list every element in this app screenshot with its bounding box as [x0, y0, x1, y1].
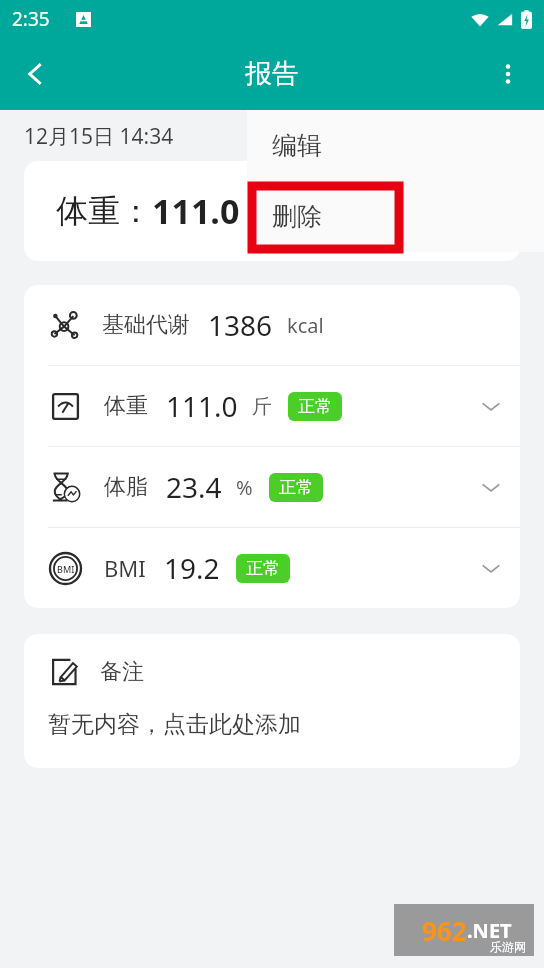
staticText: 正常 [279, 477, 313, 498]
button[interactable]: 删除 [247, 181, 544, 252]
staticText: % [236, 474, 253, 501]
button[interactable]: 体重 [24, 366, 520, 446]
button[interactable]: 体脂 [24, 447, 520, 527]
staticText: 1386 [208, 306, 273, 344]
staticText: 正常 [298, 396, 332, 417]
staticText: 19.2 [164, 549, 220, 587]
staticText: 报告 [245, 57, 299, 91]
staticText: BMI [104, 553, 146, 583]
staticText: 乐游网 [490, 939, 526, 954]
button[interactable]: 基础代谢 [24, 285, 520, 365]
staticText: .NET [467, 917, 512, 944]
staticText: 体重： [56, 191, 152, 231]
staticText: 体重 [104, 392, 148, 420]
staticText: 删除 [272, 201, 322, 232]
staticText: BMI [57, 563, 75, 575]
staticText: kcal [287, 312, 324, 339]
staticText: 12月15日 14:34 [24, 122, 174, 151]
button[interactable]: BMI [24, 528, 520, 608]
button[interactable]: More options [480, 46, 536, 102]
staticText: 体脂 [104, 473, 148, 501]
staticText: 111.0 [166, 387, 238, 425]
button[interactable]: 备注 [24, 634, 520, 768]
button[interactable]: Back [8, 46, 64, 102]
staticText: 基础代谢 [102, 311, 190, 339]
button[interactable]: 体重： [24, 161, 520, 261]
button[interactable]: 编辑 [247, 110, 544, 181]
staticText: 正常 [246, 558, 280, 579]
staticText: 962 [422, 913, 467, 948]
staticText: 暂无内容，点击此处添加 [48, 710, 301, 739]
staticText: 111.0 [152, 188, 240, 234]
staticText: 编辑 [272, 130, 322, 161]
staticText: 备注 [100, 658, 144, 686]
staticText: 23.4 [166, 468, 222, 506]
staticText: 2:35 [12, 6, 50, 32]
staticText: 斤 [252, 394, 272, 419]
